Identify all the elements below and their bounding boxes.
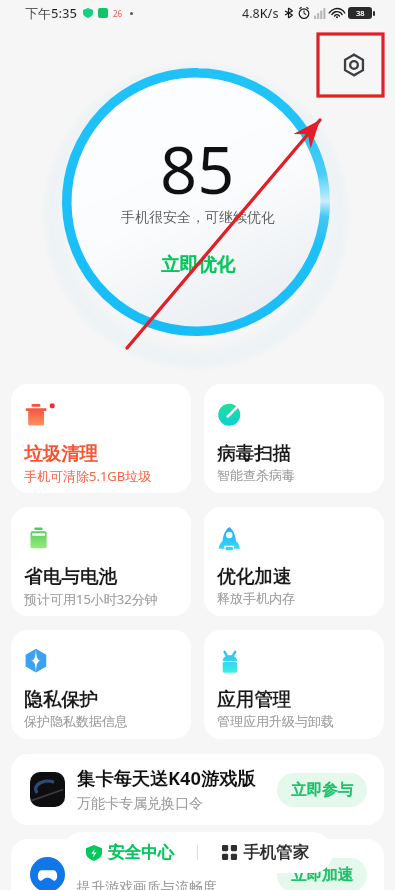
staticText: 手机很安全，可继续优化 xyxy=(121,209,275,227)
staticText: 立即加速 xyxy=(291,865,353,885)
staticText: 4.8K/s xyxy=(242,5,279,22)
staticText: 游戏加速 xyxy=(77,852,150,875)
button[interactable]: 病毒扫描 xyxy=(204,384,384,493)
staticText: 保护隐私数据信息 xyxy=(24,713,128,729)
button[interactable]: 垃圾清理 xyxy=(11,384,191,493)
staticText: 集卡每天送K40游戏版 xyxy=(77,766,256,791)
button[interactable]: 手机管家 xyxy=(198,832,333,873)
staticText: 手机可清除5.1GB垃圾 xyxy=(24,467,152,485)
staticText: 手机管家 xyxy=(243,842,309,863)
staticText: 智能查杀病毒 xyxy=(217,467,295,483)
button[interactable]: Settings xyxy=(336,47,372,83)
button[interactable]: 优化加速 xyxy=(204,507,384,616)
staticText: 垃圾清理 xyxy=(24,442,98,465)
staticText: 省电与电池 xyxy=(24,565,117,588)
button[interactable]: 省电与电池 xyxy=(11,507,191,616)
staticText: 立即参与 xyxy=(291,780,353,800)
button[interactable]: 安全中心 xyxy=(62,832,197,873)
staticText: 预计可用15小时32分钟 xyxy=(24,590,158,608)
staticText: 安全中心 xyxy=(108,842,174,863)
staticText: 隐私保护 xyxy=(24,688,98,711)
button[interactable]: 游戏加速 xyxy=(11,839,384,890)
button[interactable]: 隐私保护 xyxy=(11,630,191,739)
staticText: 26 xyxy=(113,8,123,19)
staticText: 应用管理 xyxy=(217,688,291,711)
staticText: 提升游戏画质与流畅度 xyxy=(77,879,217,890)
staticText: 85 xyxy=(160,125,235,214)
staticText: 38 xyxy=(356,8,365,18)
staticText: 万能卡专属兑换口令 xyxy=(77,795,203,813)
button[interactable]: 立即加速 xyxy=(277,858,367,890)
staticText: 立即优化 xyxy=(161,253,235,276)
button[interactable]: 集卡每天送K40游戏版 xyxy=(11,754,384,825)
staticText: 优化加速 xyxy=(217,565,291,588)
staticText: 下午5:35 xyxy=(25,4,77,22)
button[interactable]: 立即参与 xyxy=(277,773,367,807)
staticText: 管理应用升级与卸载 xyxy=(217,713,334,729)
button[interactable]: 应用管理 xyxy=(204,630,384,739)
staticText: 病毒扫描 xyxy=(217,442,291,465)
staticText: 释放手机内存 xyxy=(217,590,295,606)
